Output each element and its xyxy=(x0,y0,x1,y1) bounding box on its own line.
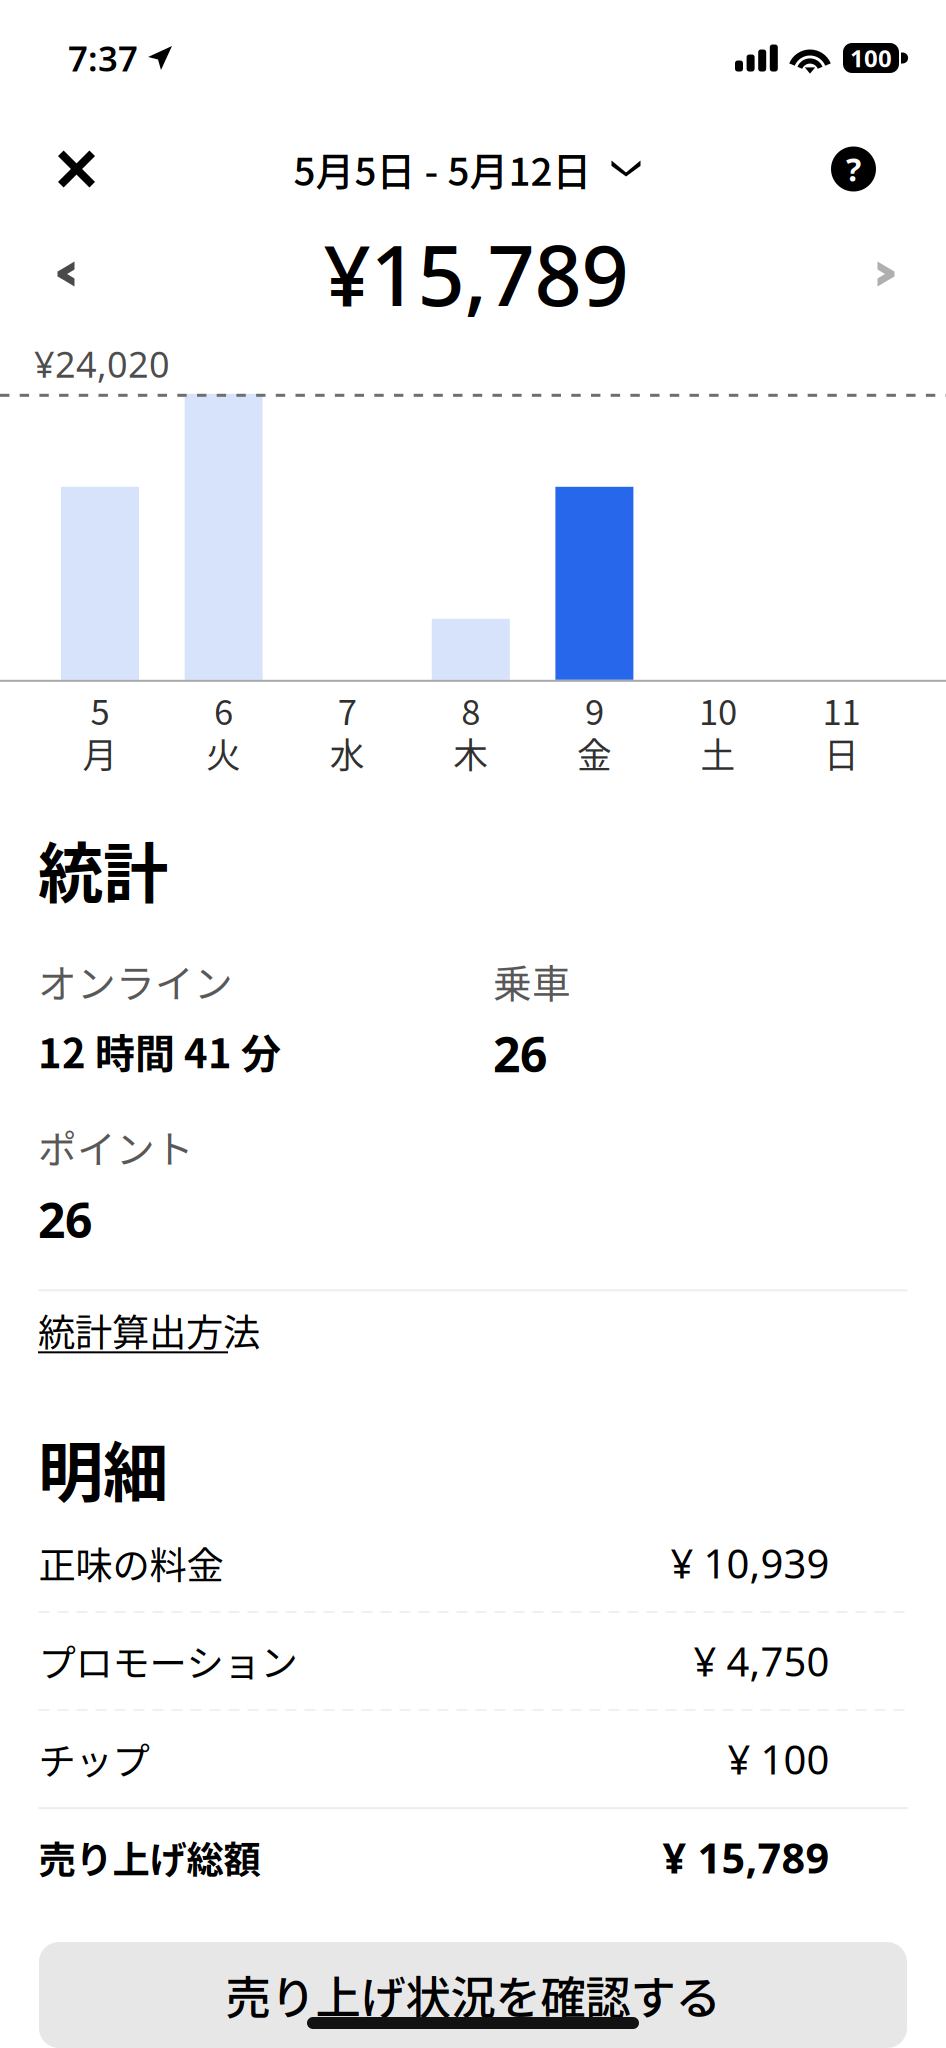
staticText: 明細 xyxy=(38,1420,168,1515)
staticText: オンライン xyxy=(38,953,233,1009)
staticText: チップ xyxy=(38,1732,149,1786)
button[interactable]: 売り上げ状況を確認する xyxy=(39,1942,907,2048)
button[interactable]: 閉じる xyxy=(58,134,146,204)
staticText: 100 xyxy=(850,42,892,74)
staticText: 7 xyxy=(338,685,357,735)
staticText: ¥24,020 xyxy=(34,340,170,388)
staticText: 乗車 xyxy=(493,953,571,1009)
staticText: 正味の料金 xyxy=(38,1536,223,1590)
staticText: 7:37 xyxy=(68,35,138,81)
staticText: 統計算出方法 xyxy=(38,1303,260,1357)
button[interactable]: 5月5日 - 5月12日 xyxy=(293,134,640,204)
button[interactable]: 統計算出方法 xyxy=(38,1303,260,1353)
staticText: 26 xyxy=(493,1022,547,1085)
button[interactable]: ヘルプ xyxy=(788,134,876,204)
staticText: 統計 xyxy=(38,821,168,916)
button[interactable]: 次の週 xyxy=(856,239,916,309)
staticText: ? xyxy=(846,148,861,190)
staticText: 26 xyxy=(38,1187,92,1251)
staticText: 8 xyxy=(461,685,480,735)
staticText: ポイント xyxy=(38,1118,194,1174)
staticText: 12 時間 41 分 xyxy=(38,1022,281,1080)
staticText: 火 xyxy=(206,728,241,778)
staticText: 11 xyxy=(823,685,861,735)
staticText: ¥ 15,789 xyxy=(662,1830,829,1885)
staticText: 9 xyxy=(585,685,604,735)
staticText: 土 xyxy=(700,728,735,778)
staticText: 6 xyxy=(214,685,233,735)
staticText: 日 xyxy=(824,728,859,778)
staticText: 木 xyxy=(453,728,488,778)
staticText: 売り上げ総額 xyxy=(38,1830,260,1885)
staticText: 売り上げ状況を確認する xyxy=(225,1962,720,2028)
staticText: 金 xyxy=(577,728,612,778)
staticText: 10 xyxy=(699,685,737,735)
staticText: 5 xyxy=(90,685,109,735)
staticText: ¥15,789 xyxy=(323,219,628,329)
staticText: ¥ 100 xyxy=(727,1732,829,1786)
staticText: 月 xyxy=(82,728,117,778)
staticText: 5月5日 - 5月12日 xyxy=(293,141,591,197)
button[interactable]: 前の週 xyxy=(36,239,96,309)
staticText: ¥ 4,750 xyxy=(693,1634,829,1688)
staticText: 水 xyxy=(330,728,365,778)
staticText: ¥ 10,939 xyxy=(670,1536,829,1589)
staticText: プロモーション xyxy=(38,1634,297,1688)
